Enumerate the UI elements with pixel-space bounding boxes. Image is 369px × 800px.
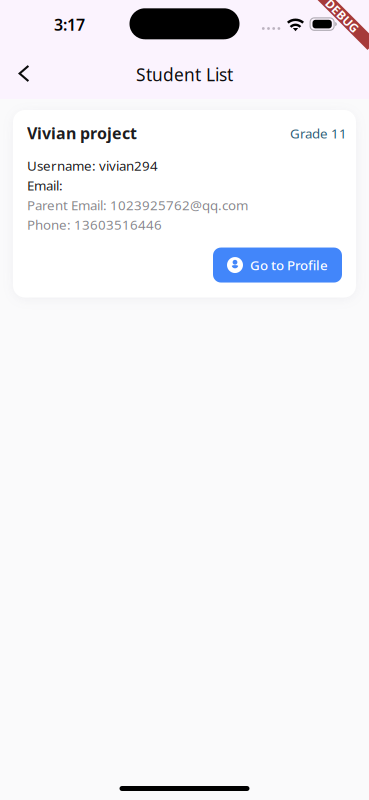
staticText: Vivian project — [27, 122, 137, 144]
staticText: Go to Profile — [250, 256, 328, 274]
staticText: Student List — [136, 63, 233, 86]
staticText: Username: vivian294 — [27, 157, 158, 174]
staticText: Parent Email: 1023925762@qq.com — [27, 196, 248, 214]
button[interactable]: Go to Profile — [213, 247, 342, 282]
staticText: 3:17 — [54, 14, 85, 35]
button[interactable]: Back — [2, 51, 46, 95]
staticText: Grade 11 — [290, 124, 347, 142]
button[interactable]: Vivian project — [13, 110, 356, 297]
staticText: Email: — [27, 176, 63, 194]
staticText: Phone: 13603516446 — [27, 216, 162, 233]
